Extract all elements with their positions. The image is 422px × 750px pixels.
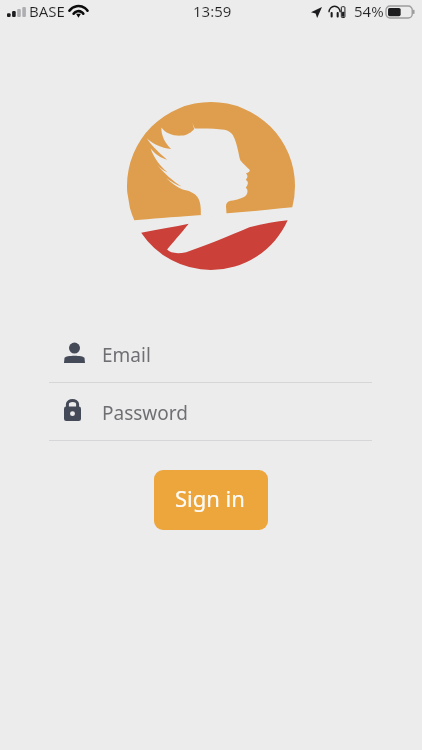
- button[interactable]: Sign in: [154, 470, 268, 530]
- staticText: 13:59: [193, 1, 232, 21]
- staticText: BASE: [29, 1, 65, 21]
- button[interactable]: Password: [0, 388, 422, 446]
- staticText: 54%: [354, 1, 384, 21]
- button[interactable]: Email: [0, 330, 422, 388]
- staticText: Sign in: [175, 483, 245, 513]
- staticText: Password: [102, 400, 188, 426]
- staticText: Email: [102, 342, 151, 368]
